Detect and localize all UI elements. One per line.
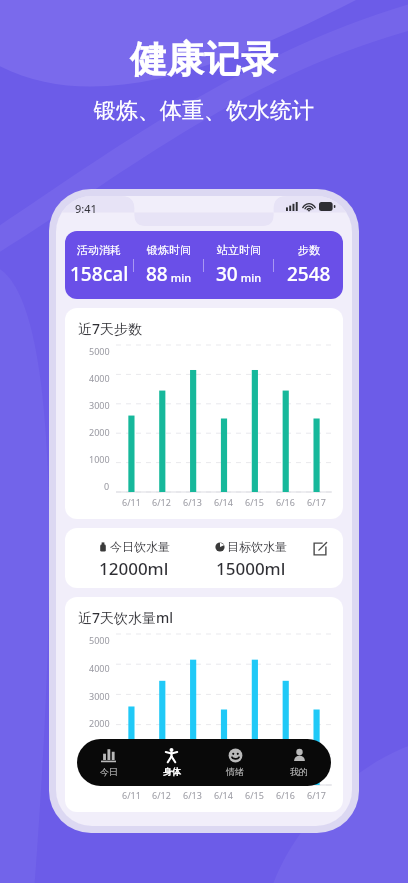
button[interactable]: 今日 [77,739,140,786]
staticText: 6/14 [214,496,233,508]
staticText: 6/14 [214,789,233,801]
staticText: 4000 [89,662,110,674]
staticText: 30 [216,261,238,287]
staticText: 近7天步数 [78,319,143,338]
staticText: 88 [146,261,168,287]
staticText: 158 [70,261,103,287]
button[interactable]: 近7天饮水量ml [65,597,343,812]
staticText: 3000 [89,399,110,411]
staticText: min [238,270,262,285]
staticText: 1000 [89,453,110,465]
staticText: 6/13 [183,496,202,508]
staticText: 站立时间 [217,243,261,257]
staticText: 5000 [89,634,110,646]
staticText: 锻炼、体重、饮水统计 [94,97,314,125]
button[interactable]: 今日饮水量 [65,528,343,588]
button[interactable]: 身体 [140,739,203,786]
staticText: min [168,270,192,285]
button[interactable]: 我的 [267,739,331,786]
staticText: 6/12 [152,496,171,508]
staticText: 6/16 [276,496,295,508]
staticText: 0 [104,773,110,785]
staticText: cal [103,261,129,287]
staticText: 今日饮水量 [110,539,170,554]
staticText: 6/15 [245,496,264,508]
staticText: 2000 [89,426,110,438]
staticText: 6/11 [122,789,141,801]
staticText: 我的 [290,766,308,777]
staticText: 6/13 [183,789,202,801]
staticText: 身体 [163,766,181,777]
button[interactable]: 编辑饮水目标 [308,537,332,561]
button[interactable]: 情绪 [203,739,267,786]
staticText: 锻炼时间 [147,243,191,257]
staticText: 6/11 [122,496,141,508]
staticText: 5000 [89,345,110,357]
staticText: 15000ml [216,557,286,580]
button[interactable]: 活动消耗 [65,231,343,299]
staticText: 3000 [89,690,110,702]
staticText: 12000ml [99,557,169,580]
staticText: 6/12 [152,789,171,801]
staticText: 步数 [298,243,320,257]
staticText: 情绪 [226,766,244,777]
staticText: 健康记录 [130,36,278,83]
staticText: 1000 [89,745,110,757]
staticText: 9:41 [75,201,97,216]
staticText: 4000 [89,372,110,384]
staticText: 2548 [287,261,331,287]
staticText: 6/17 [307,789,326,801]
staticText: 目标饮水量 [227,539,287,554]
staticText: 今日 [100,766,118,777]
staticText: 6/15 [245,789,264,801]
staticText: 6/16 [276,789,295,801]
staticText: 0 [104,480,110,492]
staticText: 2000 [89,717,110,729]
staticText: 6/17 [307,496,326,508]
staticText: 活动消耗 [77,243,121,257]
staticText: 近7天饮水量ml [78,608,174,627]
button[interactable]: 近7天步数 [65,308,343,519]
